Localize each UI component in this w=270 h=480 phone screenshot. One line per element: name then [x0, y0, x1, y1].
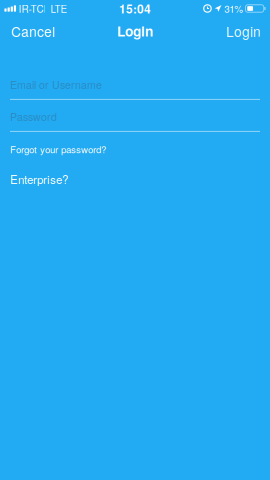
staticText: 15:04 [119, 0, 151, 17]
staticText: Login [117, 21, 153, 41]
staticText: Forgot your password? [10, 142, 106, 156]
staticText: 31% [224, 1, 243, 15]
button[interactable]: Enterprise? [10, 171, 68, 187]
button[interactable]: Forgot your password? [10, 142, 106, 156]
staticText: Email or Username [10, 77, 102, 92]
staticText: Enterprise? [10, 171, 68, 187]
button[interactable]: Login [216, 17, 270, 45]
staticText: Password [10, 109, 57, 124]
staticText: IR-TCI [18, 1, 46, 15]
button[interactable]: Cancel [0, 17, 65, 45]
staticText: Login [226, 21, 261, 41]
staticText: Cancel [11, 21, 55, 41]
staticText: LTE [50, 1, 67, 15]
